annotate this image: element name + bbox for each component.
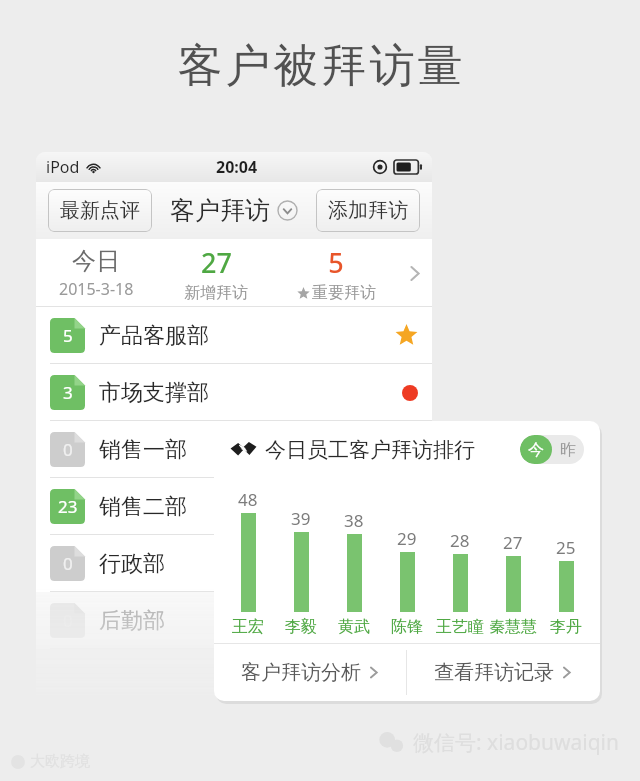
- staticText: 今日员工客户拜访排行: [265, 437, 475, 463]
- button[interactable]: 23: [36, 478, 432, 535]
- button[interactable]: 0: [36, 535, 432, 592]
- staticText: 客户拜访分析: [241, 660, 361, 685]
- staticText: 3: [63, 381, 73, 404]
- staticText: 20:04: [216, 156, 258, 178]
- button[interactable]: 查看拜访记录: [407, 644, 600, 701]
- staticText: 5: [328, 244, 344, 281]
- other: Handshake: [230, 436, 257, 463]
- staticText: 27: [201, 244, 232, 281]
- staticText: 秦慧慧: [489, 617, 537, 637]
- staticText: 23: [58, 495, 78, 518]
- button[interactable]: 3: [36, 364, 432, 421]
- button[interactable]: 客户拜访: [170, 195, 298, 226]
- staticText: 今: [528, 440, 544, 460]
- staticText: 陈锋: [391, 617, 423, 637]
- staticText: 39: [291, 507, 311, 530]
- staticText: 王艺瞳: [436, 617, 484, 637]
- staticText: 28: [450, 529, 470, 552]
- button[interactable]: 0: [36, 421, 432, 478]
- staticText: 0: [63, 438, 73, 461]
- staticText: 李丹: [550, 617, 582, 637]
- staticText: 27: [503, 531, 523, 554]
- staticText: 客户拜访: [170, 195, 270, 226]
- staticText: 2015-3-18: [59, 278, 134, 300]
- staticText: 29: [397, 527, 417, 550]
- staticText: 昨: [560, 440, 576, 460]
- staticText: 最新点评: [60, 198, 140, 223]
- staticText: 市场支撑部: [99, 379, 209, 407]
- button[interactable]: 0: [36, 592, 432, 649]
- other: Unread: [402, 385, 418, 401]
- staticText: iPod: [46, 156, 80, 178]
- staticText: 48: [238, 488, 258, 511]
- staticText: 微信号: xiaobuwaiqin: [413, 728, 620, 757]
- button[interactable]: 今日: [36, 239, 432, 307]
- other: Expand: [277, 200, 298, 221]
- staticText: 大欧跨境: [30, 752, 90, 771]
- button[interactable]: 最新点评: [48, 189, 152, 232]
- staticText: 李毅: [285, 617, 317, 637]
- staticText: 25: [556, 536, 576, 559]
- staticText: 行政部: [99, 550, 165, 578]
- staticText: 新增拜访: [184, 283, 248, 303]
- staticText: 查看拜访记录: [434, 660, 554, 685]
- button[interactable]: 5: [36, 307, 432, 364]
- staticText: 王宏: [232, 617, 264, 637]
- button[interactable]: 客户拜访分析: [214, 644, 406, 701]
- staticText: 38: [344, 509, 364, 532]
- staticText: 客户被拜访量: [176, 38, 464, 95]
- staticText: 销售二部: [99, 493, 187, 521]
- staticText: 黄武: [338, 617, 370, 637]
- staticText: 重要拜访: [312, 283, 376, 303]
- staticText: 今日: [72, 246, 120, 276]
- staticText: 添加拜访: [328, 198, 408, 223]
- staticText: 0: [63, 552, 73, 575]
- staticText: 产品客服部: [99, 322, 209, 350]
- staticText: 5: [63, 324, 73, 347]
- button[interactable]: 添加拜访: [316, 189, 420, 232]
- other: Important: [395, 324, 418, 347]
- staticText: 后勤部: [99, 607, 165, 635]
- staticText: 销售一部: [99, 436, 187, 464]
- button[interactable]: 今: [520, 435, 584, 464]
